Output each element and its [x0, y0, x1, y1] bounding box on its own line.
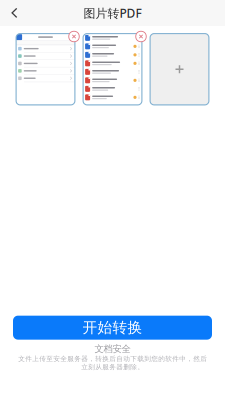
- button[interactable]: [82, 33, 142, 105]
- button[interactable]: 开始转换: [13, 316, 212, 340]
- staticText: 文档安全: [94, 343, 130, 355]
- button[interactable]: [15, 33, 75, 105]
- button[interactable]: Remove image: [129, 33, 142, 46]
- button[interactable]: Remove image: [62, 33, 75, 46]
- button[interactable]: Add image: [149, 33, 209, 105]
- staticText: 文件上传至安全服务器，转换后自动下载到您的软件中，然后立刻从服务器删除。: [18, 355, 207, 371]
- staticText: 图片转PDF: [83, 5, 141, 21]
- staticText: 开始转换: [82, 319, 142, 337]
- button[interactable]: Back: [0, 0, 29, 26]
